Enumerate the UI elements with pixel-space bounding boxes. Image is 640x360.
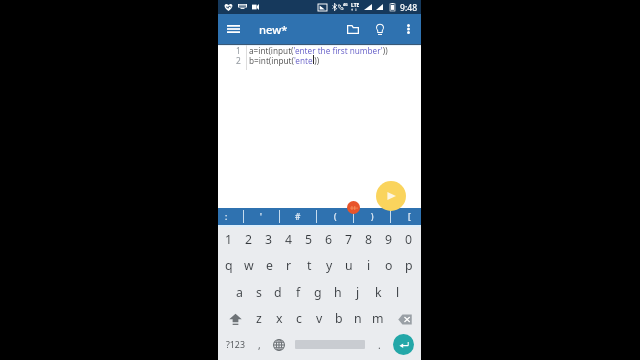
button[interactable]: More options [397,18,419,40]
button[interactable]: y [319,252,339,279]
button[interactable]: Tips [369,18,391,40]
staticText: new* [259,22,288,37]
staticText: z [256,310,262,327]
button[interactable]: n [348,305,368,332]
staticText: y [326,257,333,274]
button[interactable]: : [217,208,235,225]
button[interactable]: p [399,252,419,279]
button[interactable]: e [259,252,279,279]
button[interactable]: Open file [342,18,364,40]
button[interactable]: , [250,331,268,358]
button[interactable]: j [348,279,368,306]
staticText: : [225,211,228,222]
staticText: x [276,310,283,327]
button[interactable]: ( [326,208,344,225]
staticText: q [225,257,233,274]
button[interactable]: b [329,305,349,332]
button[interactable]: Shift [221,306,249,333]
staticText: 8 [365,231,373,248]
staticText: 2 [245,231,253,248]
button[interactable]: d [268,279,288,306]
staticText: a=int(input('enter the first number')) [249,45,388,56]
staticText: LTE [351,2,360,9]
staticText: 3 [265,231,273,248]
button[interactable]: 0 [399,226,419,253]
button[interactable]: Stop [347,201,360,214]
button[interactable]: m [368,305,388,332]
staticText: ) [371,211,374,222]
button[interactable]: q [219,252,239,279]
staticText: 0 [405,231,413,248]
staticText: e [266,257,273,274]
staticText: w [244,257,254,274]
staticText: a [236,284,243,301]
button[interactable]: # [289,208,307,225]
staticText: v [316,310,323,327]
button[interactable]: a [229,279,249,306]
button[interactable]: Navigation menu [222,17,245,41]
button[interactable]: 8 [359,226,379,253]
staticText: 5 [305,231,313,248]
button[interactable]: k [368,279,388,306]
staticText: b [335,310,343,327]
staticText: 4 [285,231,293,248]
button[interactable]: ' [252,208,270,225]
button[interactable]: Enter [391,331,415,358]
button[interactable]: 7 [339,226,359,253]
staticText: ?123 [226,339,245,351]
button[interactable]: 1 [219,226,239,253]
staticText: 4G [343,2,348,7]
button[interactable]: i [359,252,379,279]
button[interactable]: g [308,279,328,306]
staticText: g [314,284,322,301]
button[interactable]: [ [400,208,418,225]
button[interactable]: 4 [279,226,299,253]
button[interactable]: z [249,305,269,332]
staticText: l [396,284,400,301]
button[interactable]: 5 [299,226,319,253]
staticText: 2 [236,55,241,66]
button[interactable]: t [299,252,319,279]
staticText: n [354,310,362,327]
button[interactable]: c [289,305,309,332]
button[interactable]: Space [291,331,369,358]
button[interactable]: s [249,279,269,306]
button[interactable]: w [239,252,259,279]
staticText: s [256,284,262,301]
staticText: r [286,257,292,274]
staticText: o [385,257,393,274]
staticText: f [296,284,301,301]
staticText: ' [260,211,262,222]
button[interactable]: Run script [376,181,406,211]
button[interactable]: h [328,279,348,306]
button[interactable]: Change keyboard [269,331,289,358]
button[interactable]: x [269,305,289,332]
staticText: h [334,284,342,301]
staticText: d [274,284,282,301]
button[interactable]: . [371,331,387,358]
staticText: 9:48 [400,2,418,14]
staticText: , [258,338,261,352]
staticText: u [345,257,353,274]
staticText: 6 [325,231,333,248]
button[interactable]: r [279,252,299,279]
button[interactable]: 6 [319,226,339,253]
staticText: b=int(input('ente')) [249,55,320,66]
staticText: c [296,310,302,327]
button[interactable]: 9 [379,226,399,253]
button[interactable]: f [288,279,308,306]
button[interactable]: v [309,305,329,332]
button[interactable]: o [379,252,399,279]
staticText: k [375,284,382,301]
staticText: [ [408,211,411,222]
button[interactable]: ?123 [220,331,250,358]
staticText: 1 [236,45,241,56]
staticText: # [295,211,301,222]
button[interactable]: ) [363,208,381,225]
button[interactable]: Backspace [392,306,418,333]
staticText: 9 [385,231,393,248]
button[interactable]: 3 [259,226,279,253]
button[interactable]: u [339,252,359,279]
button[interactable]: l [388,279,408,306]
button[interactable]: 2 [239,226,259,253]
